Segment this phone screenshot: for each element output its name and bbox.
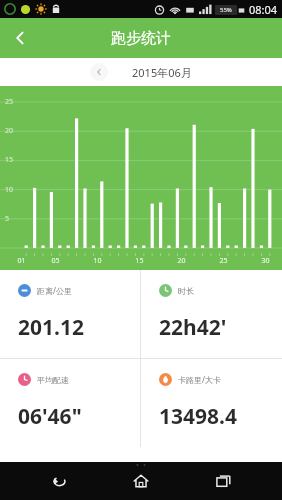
staticText: 05	[51, 256, 60, 266]
staticText: 201.12	[18, 313, 84, 342]
staticText: 22h42'	[159, 313, 227, 342]
button[interactable]: Back	[36, 462, 82, 500]
staticText: 15	[4, 155, 13, 165]
button[interactable]: Previous month	[90, 63, 108, 81]
staticText: 25	[4, 97, 13, 107]
staticText: 10	[4, 185, 13, 195]
button[interactable]: 距离/公里	[0, 270, 140, 358]
staticText: 距离/公里	[37, 285, 72, 296]
staticText: 01	[17, 256, 26, 266]
staticText: 06'46"	[18, 402, 82, 431]
staticText: 25	[219, 256, 228, 266]
staticText: 08:04	[249, 2, 278, 17]
button[interactable]: Back	[0, 18, 40, 58]
button[interactable]: Recents	[200, 462, 246, 500]
staticText: 55%	[220, 6, 232, 14]
staticText: 10	[93, 256, 102, 266]
button[interactable]: 卡路里/大卡	[141, 359, 282, 447]
staticText: 时长	[178, 286, 194, 296]
staticText: 15	[135, 256, 144, 266]
staticText: 13498.4	[159, 402, 237, 431]
button[interactable]: Home	[118, 462, 164, 500]
staticText: 跑步统计	[111, 29, 171, 48]
staticText: 20	[177, 256, 186, 266]
staticText: 30	[261, 256, 270, 266]
staticText: 5	[4, 214, 9, 224]
button[interactable]: 平均配速	[0, 359, 140, 447]
staticText: 2015年06月	[132, 65, 192, 80]
staticText: 卡路里/大卡	[178, 374, 221, 385]
button[interactable]: 时长	[141, 270, 282, 358]
staticText: 20	[4, 126, 13, 136]
staticText: 平均配速	[37, 375, 69, 385]
